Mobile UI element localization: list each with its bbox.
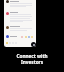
button[interactable]: Compose message — [31, 42, 36, 47]
staticText: Connect with Investors — [0, 53, 64, 65]
